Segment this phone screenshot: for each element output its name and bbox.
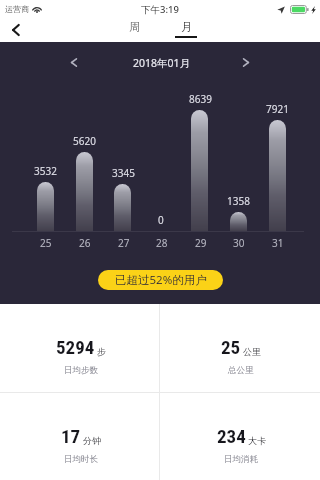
staticText: 日均时长: [64, 454, 98, 465]
staticText: 已超过52%的用户: [115, 272, 207, 288]
staticText: 公里: [243, 346, 261, 357]
button[interactable]: Next month: [238, 54, 254, 70]
button[interactable]: Back: [0, 18, 32, 42]
button[interactable]: 周: [121, 20, 147, 38]
staticText: 下午3:19: [141, 3, 179, 16]
staticText: 分钟: [83, 435, 101, 446]
button[interactable]: 25: [160, 304, 320, 392]
staticText: 周: [129, 20, 140, 34]
staticText: 8639: [189, 92, 212, 105]
button[interactable]: Previous month: [66, 54, 82, 70]
button[interactable]: 5294: [0, 304, 159, 392]
staticText: 17: [61, 425, 81, 447]
staticText: 日均步数: [64, 365, 98, 376]
staticText: 总公里: [228, 365, 254, 376]
button[interactable]: 17: [0, 393, 159, 480]
staticText: 3532: [34, 164, 57, 177]
button[interactable]: 已超过52%的用户: [98, 270, 223, 290]
staticText: 1358: [227, 194, 250, 207]
staticText: 5294: [56, 336, 95, 358]
button[interactable]: 月: [173, 20, 199, 38]
staticText: 31: [272, 236, 284, 249]
staticText: 26: [79, 236, 91, 249]
staticText: 29: [195, 236, 207, 249]
staticText: 步: [97, 346, 106, 357]
staticText: 7921: [266, 102, 289, 115]
staticText: 3345: [112, 166, 135, 179]
staticText: 月: [181, 20, 192, 34]
staticText: 运营商: [5, 4, 29, 14]
staticText: 30: [233, 236, 245, 249]
staticText: 0: [158, 213, 164, 226]
button[interactable]: 234: [160, 393, 320, 480]
staticText: 5620: [73, 134, 96, 147]
staticText: 大卡: [248, 435, 266, 446]
staticText: 234: [217, 425, 246, 447]
staticText: 28: [156, 236, 168, 249]
staticText: 27: [118, 236, 130, 249]
staticText: 25: [221, 336, 241, 358]
staticText: 25: [40, 236, 52, 249]
staticText: 日均消耗: [224, 454, 258, 465]
staticText: 2018年01月: [133, 56, 191, 70]
